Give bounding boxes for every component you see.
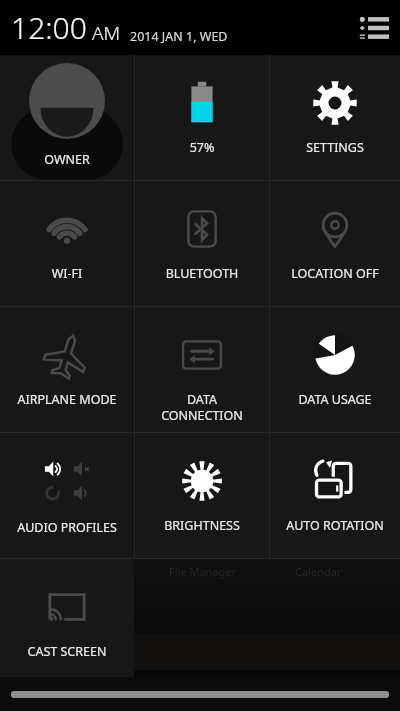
staticText: File Manager [169,564,237,579]
button[interactable]: AIRPLANE MODE [0,307,134,432]
button[interactable]: LOCATION OFF [270,181,400,306]
button[interactable]: CAST SCREEN [0,559,134,684]
button[interactable]: DATA USAGE [270,307,400,432]
staticText: Calendar [295,564,342,579]
button[interactable]: BRIGHTNESS [135,433,269,558]
button[interactable]: DATA CONNECTION [135,307,269,432]
button[interactable]: AUDIO PROFILES [0,433,134,558]
button[interactable]: 57% [135,55,269,180]
button[interactable]: WI-FI [0,181,134,306]
staticText: AUTO ROTATION [274,517,396,534]
button[interactable]: BLUETOOTH [135,181,269,306]
staticText: CAST SCREEN [4,643,130,660]
staticText: WI-FI [4,265,130,282]
button[interactable]: Settings list [359,15,389,41]
staticText: DATA USAGE [274,391,396,408]
staticText: BRIGHTNESS [139,517,265,534]
button[interactable]: Drag handle [0,677,400,711]
staticText: LOCATION OFF [274,265,396,282]
staticText: AIRPLANE MODE [4,391,130,408]
staticText: BLUETOOTH [139,265,265,282]
staticText: OWNER [0,151,134,168]
button[interactable]: Owner [0,55,134,180]
staticText: 2014 JAN 1, WED [130,28,228,45]
button[interactable]: AUTO ROTATION [270,433,400,558]
staticText: AUDIO PROFILES [4,519,130,536]
staticText: 57% [139,139,265,156]
staticText: DATA CONNECTION [139,391,265,423]
staticText: 12:00 [11,7,87,48]
staticText: SETTINGS [274,139,396,156]
button[interactable]: SETTINGS [270,55,400,180]
staticText: AM [92,20,121,46]
